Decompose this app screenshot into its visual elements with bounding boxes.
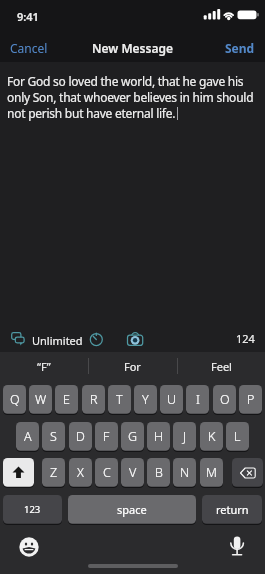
button[interactable]: “F” <box>0 352 88 380</box>
staticText: 124 <box>236 331 255 346</box>
staticText: Cancel <box>10 40 48 56</box>
button[interactable]: S <box>42 422 65 452</box>
staticText: For God so loved the world, that he gave… <box>7 73 244 89</box>
button[interactable]: Q <box>3 385 26 415</box>
button[interactable] <box>14 532 44 562</box>
staticText: C <box>103 464 111 481</box>
button[interactable]: Send <box>221 36 259 60</box>
staticText: only Son, that whoever believes in him s… <box>7 89 254 105</box>
button[interactable]: K <box>200 422 223 452</box>
staticText: U <box>167 391 177 408</box>
button[interactable]: X <box>69 458 92 488</box>
staticText: L <box>234 428 241 445</box>
staticText: N <box>180 464 190 481</box>
button[interactable]: C <box>95 458 118 488</box>
staticText: “F” <box>37 359 51 374</box>
staticText: B <box>155 464 163 481</box>
button[interactable]: P <box>239 385 262 415</box>
staticText: For <box>124 359 141 374</box>
button[interactable]: W <box>29 385 52 415</box>
staticText: New Message <box>92 40 173 56</box>
button[interactable]: Y <box>134 385 157 415</box>
staticText: W <box>35 391 47 408</box>
staticText: S <box>50 428 57 445</box>
staticText: K <box>208 428 216 445</box>
button[interactable]: 123 <box>3 495 62 525</box>
button[interactable]: U <box>160 385 183 415</box>
button[interactable]: L <box>226 422 249 452</box>
button[interactable] <box>119 326 149 352</box>
staticText: Unlimited <box>32 333 83 348</box>
button[interactable]: return <box>202 495 262 525</box>
button[interactable]: E <box>55 385 78 415</box>
staticText: Send <box>225 40 255 56</box>
button[interactable]: A <box>16 422 39 452</box>
staticText: A <box>24 428 32 445</box>
staticText: O <box>220 391 230 408</box>
button[interactable]: Cancel <box>6 36 52 60</box>
staticText: X <box>77 464 84 481</box>
button[interactable]: Unlimited <box>0 326 92 352</box>
staticText: not perish but have eternal life. <box>7 105 176 121</box>
staticText: G <box>128 428 138 445</box>
staticText: P <box>247 391 255 408</box>
button[interactable] <box>232 458 263 488</box>
staticText: Feel <box>211 359 232 374</box>
staticText: 9:41 <box>17 9 39 24</box>
button[interactable]: J <box>173 422 196 452</box>
staticText: return <box>216 502 249 517</box>
button[interactable]: Z <box>42 458 65 488</box>
staticText: H <box>154 428 164 445</box>
staticText: J <box>183 428 187 445</box>
staticText: Q <box>10 391 20 408</box>
button[interactable]: I <box>186 385 209 415</box>
staticText: Y <box>142 391 149 408</box>
button[interactable] <box>3 458 34 488</box>
button[interactable]: N <box>173 458 196 488</box>
staticText: T <box>116 391 123 408</box>
button[interactable]: space <box>68 495 196 525</box>
staticText: F <box>103 428 110 445</box>
button[interactable]: V <box>121 458 144 488</box>
button[interactable]: H <box>147 422 170 452</box>
button[interactable]: Feel <box>177 352 265 380</box>
button[interactable]: M <box>200 458 223 488</box>
button[interactable]: D <box>69 422 92 452</box>
staticText: 123 <box>24 503 41 516</box>
button[interactable]: For <box>88 352 177 380</box>
button[interactable]: F <box>95 422 118 452</box>
staticText: E <box>63 391 70 408</box>
button[interactable] <box>82 326 110 352</box>
staticText: V <box>129 464 137 481</box>
staticText: space <box>117 502 147 517</box>
staticText: M <box>206 464 217 481</box>
button[interactable]: B <box>147 458 170 488</box>
staticText: R <box>90 391 98 408</box>
button[interactable]: O <box>213 385 236 415</box>
staticText: D <box>76 428 85 445</box>
button[interactable] <box>222 532 252 562</box>
button[interactable]: G <box>121 422 144 452</box>
button[interactable]: T <box>108 385 131 415</box>
staticText: I <box>196 391 200 408</box>
staticText: Z <box>50 464 58 481</box>
button[interactable]: R <box>82 385 105 415</box>
